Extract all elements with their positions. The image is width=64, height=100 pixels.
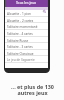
- staticText: Solitaire momentané: [7, 25, 38, 29]
- staticText: Solitaire - 3 cartes: [7, 45, 33, 49]
- staticText: Le jeu de l'agacerie: [7, 58, 35, 62]
- button[interactable]: Solitaire Russe: [5, 37, 48, 44]
- button[interactable]: Alouette - 2 cartes: [5, 17, 48, 24]
- staticText: Solitaire Russe: [7, 39, 29, 43]
- staticText: autres jeux: [17, 89, 48, 96]
- staticText: ... et plus de 130: [11, 83, 54, 90]
- staticText: Solitaire Classique: [7, 52, 34, 56]
- button[interactable]: Tous les jeux: [5, 0, 48, 7]
- button[interactable]: Le jeu de l'agacerie: [5, 56, 48, 63]
- button[interactable]: Solitaire - 4 cartes: [5, 30, 48, 37]
- staticText: Tous les jeux: [16, 0, 37, 4]
- button[interactable]: Alouette - 1 pion: [5, 10, 48, 17]
- staticText: Solitaire - 4 cartes: [7, 32, 33, 36]
- staticText: Alouette - 2 cartes: [7, 19, 34, 23]
- button[interactable]: Solitaire - 3 cartes: [5, 43, 48, 50]
- button[interactable]: Search: [43, 10, 46, 13]
- button[interactable]: Solitaire Classique: [5, 50, 48, 57]
- staticText: Alouette - 1 pion: [7, 12, 31, 16]
- button[interactable]: Solitaire momentané: [5, 23, 48, 30]
